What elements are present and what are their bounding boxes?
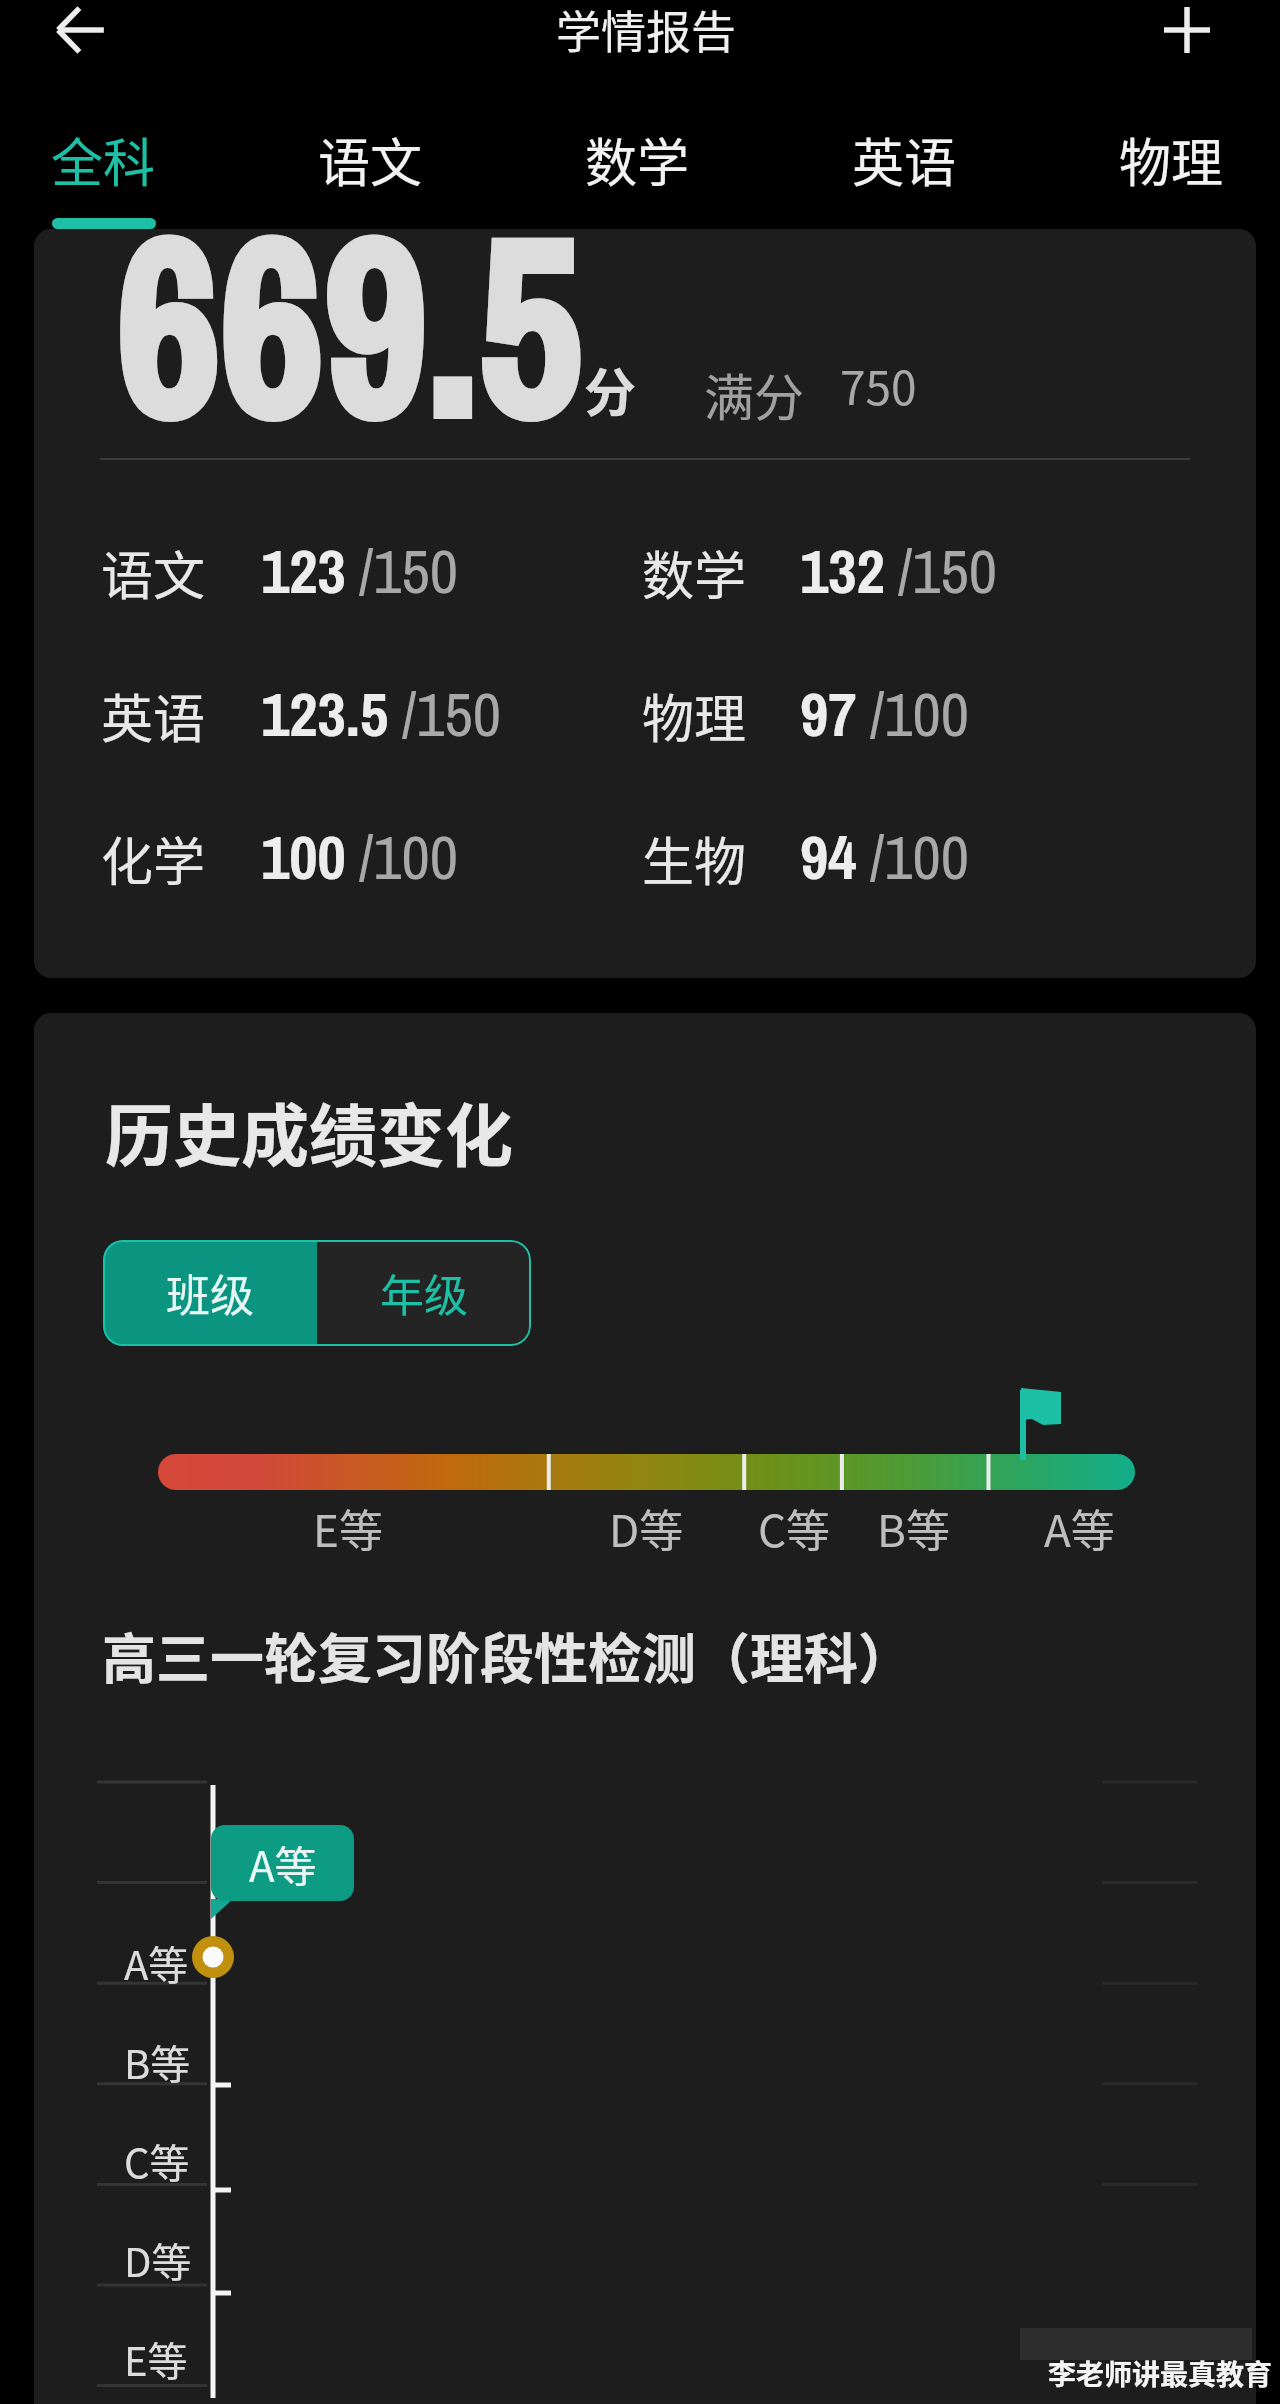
staticText: /150 — [359, 529, 458, 613]
staticText: /100 — [359, 815, 458, 899]
staticText: 分 — [584, 352, 637, 427]
staticText: 英语 — [852, 122, 957, 197]
staticText: D等 — [124, 2231, 192, 2289]
staticText: A等 — [249, 1833, 317, 1894]
staticText: 语文 — [318, 122, 423, 197]
button[interactable]: 全科 — [37, 108, 169, 231]
staticText: 班级 — [166, 1261, 254, 1325]
button[interactable]: 数学 — [571, 108, 703, 231]
button[interactable]: 物理 — [1105, 108, 1237, 231]
staticText: A等 — [1044, 1496, 1115, 1560]
staticText: 物理 — [642, 678, 747, 753]
button[interactable]: A等 — [211, 1825, 354, 1901]
staticText: /150 — [402, 672, 501, 756]
staticText: 物理 — [1119, 122, 1224, 197]
staticText: 语文 — [101, 535, 206, 610]
staticText: E等 — [124, 2330, 188, 2388]
staticText: B等 — [877, 1496, 950, 1560]
staticText: D等 — [609, 1496, 684, 1560]
staticText: /150 — [898, 529, 997, 613]
staticText: 123.5 — [261, 672, 389, 756]
button[interactable]: 英语 — [838, 108, 970, 231]
staticText: 94 — [800, 815, 857, 899]
staticText: 李老师讲最真教育 — [1048, 2353, 1273, 2394]
staticText: /100 — [870, 672, 969, 756]
staticText: /100 — [870, 815, 969, 899]
button[interactable]: Add — [1139, 0, 1235, 78]
staticText: 132 — [800, 529, 885, 613]
staticText: A等 — [124, 1934, 189, 1992]
staticText: B等 — [124, 2033, 191, 2091]
staticText: 英语 — [101, 678, 206, 753]
button[interactable]: Back — [34, 0, 130, 78]
staticText: 750 — [840, 352, 917, 419]
staticText: 97 — [800, 672, 857, 756]
staticText: 数学 — [642, 535, 747, 610]
staticText: 123 — [261, 529, 346, 613]
staticText: 化学 — [101, 821, 206, 896]
staticText: 100 — [261, 815, 346, 899]
staticText: C等 — [758, 1496, 831, 1560]
staticText: E等 — [313, 1496, 383, 1560]
staticText: 高三一轮复习阶段性检测（理科） — [102, 1616, 912, 1694]
button[interactable]: 班级 — [103, 1240, 317, 1346]
staticText: C等 — [124, 2132, 190, 2190]
staticText: 学情报告 — [556, 0, 737, 62]
staticText: 数学 — [585, 122, 690, 197]
button[interactable]: 语文 — [304, 108, 436, 231]
staticText: 669.5 — [117, 229, 583, 494]
staticText: 全科 — [51, 122, 156, 197]
staticText: 满分 — [704, 358, 804, 430]
staticText: 生物 — [642, 821, 747, 896]
staticText: 历史成绩变化 — [105, 1082, 514, 1180]
button[interactable]: 年级 — [317, 1240, 531, 1346]
staticText: 年级 — [380, 1261, 468, 1325]
